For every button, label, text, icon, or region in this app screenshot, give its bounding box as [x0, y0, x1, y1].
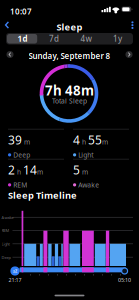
- staticText: Sunday, September 8: [28, 51, 110, 61]
- button[interactable]: Previous day: [6, 51, 13, 58]
- button[interactable]: 1d: [6, 33, 38, 44]
- staticText: REM: [1, 228, 9, 233]
- button[interactable]: Sleep end: [122, 268, 128, 274]
- staticText: Light: [1, 241, 9, 247]
- staticText: Sleep: [56, 21, 82, 33]
- staticText: Awake: [78, 180, 99, 189]
- staticText: Sleep Timeline: [8, 189, 77, 201]
- staticText: 7h 48m: [45, 81, 94, 99]
- staticText: Light: [78, 150, 93, 159]
- button[interactable]: 4w: [70, 33, 102, 44]
- staticText: 21:17: [8, 276, 21, 283]
- staticText: 5: [73, 162, 80, 178]
- staticText: Deep: [13, 150, 30, 159]
- staticText: h: [80, 138, 88, 146]
- staticText: m: [37, 168, 43, 176]
- staticText: Deep: [1, 255, 10, 260]
- staticText: m: [102, 138, 108, 146]
- staticText: m: [80, 168, 88, 176]
- staticText: m: [22, 138, 30, 146]
- staticText: 05:10: [118, 276, 131, 283]
- staticText: h: [15, 168, 23, 176]
- staticText: 10:07: [10, 6, 32, 17]
- button[interactable]: Back: [0, 0, 14, 14]
- staticText: 39: [8, 132, 22, 148]
- staticText: Awake: [1, 215, 13, 220]
- staticText: 2: [8, 162, 15, 178]
- staticText: 7d: [49, 33, 59, 44]
- staticText: 4: [73, 132, 80, 148]
- button[interactable]: Sleep start: [10, 266, 20, 276]
- button[interactable]: Next day: [125, 51, 132, 58]
- staticText: 4w: [80, 33, 91, 44]
- staticText: 14: [23, 162, 37, 178]
- staticText: 1d: [17, 33, 27, 44]
- staticText: REM: [13, 180, 27, 189]
- staticText: 1y: [113, 33, 122, 44]
- staticText: zZ: [13, 268, 17, 274]
- button[interactable]: 7d: [38, 33, 70, 44]
- staticText: Total Sleep: [52, 96, 87, 105]
- staticText: 55: [88, 132, 102, 148]
- button[interactable]: 1y: [102, 33, 133, 44]
